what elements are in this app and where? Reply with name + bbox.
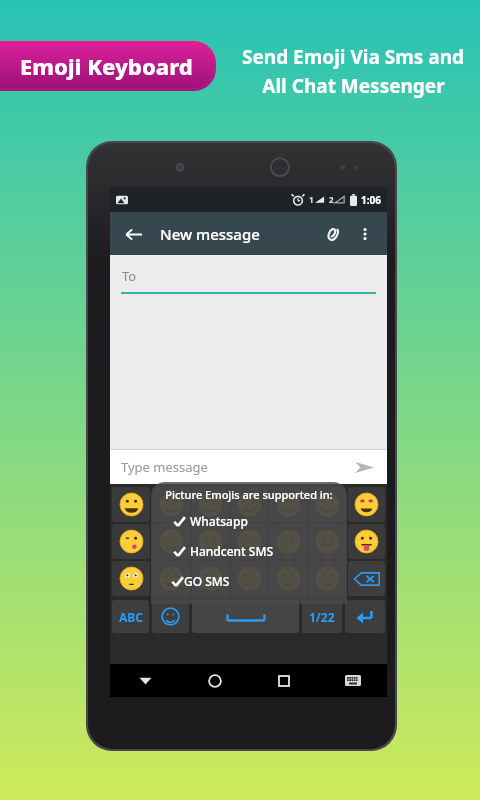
button[interactable]: Emoji xyxy=(348,524,385,559)
staticText: Send Emoji Via Sms and xyxy=(242,44,464,70)
button[interactable]: Emoji xyxy=(231,561,268,596)
button[interactable]: Emoji xyxy=(309,561,346,596)
button[interactable]: Emoji xyxy=(192,561,229,596)
button[interactable]: Emoji xyxy=(348,487,385,522)
button[interactable]: Recents xyxy=(249,664,318,697)
button[interactable]: Emoji xyxy=(192,524,229,559)
staticText: New message xyxy=(160,224,260,244)
staticText: 1:06 xyxy=(361,193,381,207)
staticText: ABC xyxy=(119,609,143,625)
button[interactable]: Back xyxy=(120,221,146,247)
button[interactable]: Emoji xyxy=(231,524,268,559)
button[interactable]: ABC xyxy=(112,600,149,633)
button[interactable]: Backspace xyxy=(348,561,385,596)
button[interactable]: Enter xyxy=(345,600,385,633)
button[interactable]: Emoji xyxy=(152,524,190,559)
staticText: 1/22 xyxy=(309,609,335,625)
button[interactable]: Emoji xyxy=(270,487,307,522)
staticText: Handcent SMS xyxy=(190,543,274,559)
button[interactable]: Type message xyxy=(121,450,376,484)
button[interactable]: Emoji xyxy=(192,487,229,522)
button[interactable]: Send xyxy=(352,455,376,479)
staticText: To xyxy=(122,267,137,285)
button[interactable]: Emoji xyxy=(112,524,150,559)
button[interactable]: Emoji xyxy=(152,561,190,596)
button[interactable]: Emoji xyxy=(231,487,268,522)
button[interactable]: Space xyxy=(192,600,299,633)
staticText: Whatsapp xyxy=(190,513,248,529)
button[interactable]: Emoji xyxy=(112,561,150,596)
button[interactable]: Emoji xyxy=(270,524,307,559)
button[interactable]: Keyboard xyxy=(318,664,387,697)
button[interactable]: 1/22 xyxy=(302,600,342,633)
button[interactable]: Attach xyxy=(319,221,345,247)
button[interactable]: Emoji xyxy=(270,561,307,596)
button[interactable]: Emoji panel xyxy=(152,600,189,633)
button[interactable]: Emoji xyxy=(112,487,150,522)
staticText: Emoji Keyboard xyxy=(20,51,193,81)
button[interactable]: Emoji Keyboard xyxy=(0,41,216,91)
button[interactable]: More options xyxy=(353,222,377,246)
staticText: Type message xyxy=(121,458,208,476)
staticText: All Chat Messenger xyxy=(262,73,445,99)
button[interactable]: Home xyxy=(180,664,249,697)
staticText: 2 xyxy=(329,194,334,205)
staticText: 1 xyxy=(309,194,314,205)
button[interactable]: Back xyxy=(110,664,180,697)
button[interactable]: Emoji xyxy=(309,524,346,559)
button[interactable]: Emoji xyxy=(152,487,190,522)
staticText: GO SMS xyxy=(184,573,230,589)
button[interactable]: Emoji xyxy=(309,487,346,522)
staticText: Picture Emojis are supported in: xyxy=(151,487,347,502)
